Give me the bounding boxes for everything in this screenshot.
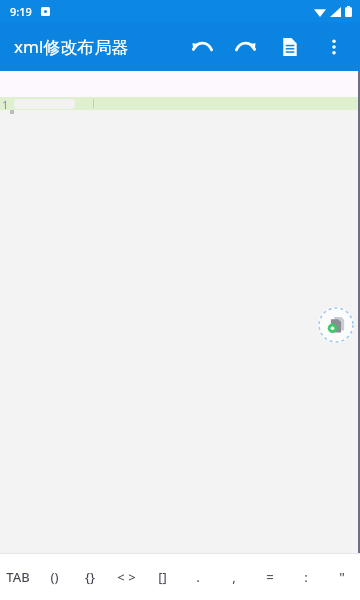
staticText: [] <box>158 568 167 586</box>
staticText: TAB <box>6 568 30 586</box>
staticText: {} <box>85 568 95 586</box>
staticText: 9:19 <box>10 4 32 19</box>
staticText: . <box>196 568 200 586</box>
button[interactable]: File <box>268 25 312 69</box>
staticText: " <box>339 568 345 586</box>
button[interactable]: : <box>288 554 324 600</box>
button[interactable]: {} <box>72 554 108 600</box>
staticText: () <box>50 568 59 586</box>
button[interactable]: Undo <box>180 25 224 69</box>
staticText: xml修改布局器 <box>14 35 129 58</box>
button[interactable]: = <box>252 554 288 600</box>
button[interactable]: " <box>324 554 360 600</box>
staticText: = <box>266 568 274 586</box>
button[interactable]: Redo <box>224 25 268 69</box>
button[interactable]: Preview layout <box>318 307 354 343</box>
button[interactable]: More options <box>312 25 356 69</box>
button[interactable]: < > <box>108 554 144 600</box>
staticText: 1 <box>2 97 9 110</box>
button[interactable]: [] <box>144 554 180 600</box>
button[interactable]: . <box>180 554 216 600</box>
button[interactable]: , <box>216 554 252 600</box>
staticText: , <box>232 568 236 586</box>
button[interactable]: TAB <box>0 554 36 600</box>
button[interactable]: () <box>36 554 72 600</box>
staticText: < > <box>117 568 136 586</box>
staticText: : <box>304 568 308 586</box>
